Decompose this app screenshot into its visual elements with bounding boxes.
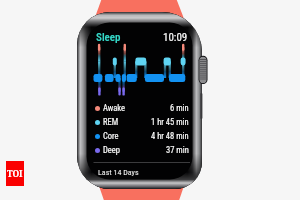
staticText: 1 hr 45 min — [151, 117, 189, 127]
button[interactable]: REM — [95, 115, 189, 129]
staticText: Core — [103, 131, 119, 141]
staticText: 6 min — [170, 103, 189, 113]
button[interactable]: Last 14 Days — [98, 168, 139, 177]
button[interactable]: Sleep — [96, 31, 121, 44]
button[interactable]: Times of India logo — [6, 161, 24, 186]
staticText: 37 min — [166, 145, 189, 155]
staticText: Awake — [103, 103, 126, 113]
button[interactable]: Awake — [95, 101, 189, 115]
button[interactable]: Deep — [95, 143, 189, 157]
staticText: REM — [103, 117, 119, 127]
staticText: 10:09 — [163, 31, 188, 44]
staticText: TOI — [7, 168, 23, 180]
staticText: 4 hr 48 min — [151, 131, 189, 141]
staticText: Deep — [103, 145, 121, 155]
button[interactable]: Core — [95, 129, 189, 143]
